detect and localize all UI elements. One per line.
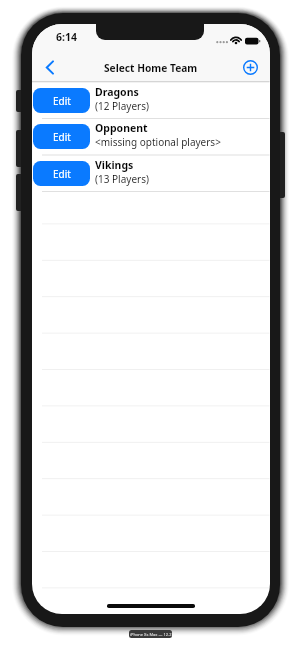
staticText: Select Home Team [104,61,198,75]
button[interactable]: Edit [32,82,270,119]
button[interactable]: Edit [33,161,90,186]
staticText: (12 Players) [95,99,149,113]
staticText: Opponent [95,121,148,135]
staticText: (13 Players) [95,172,149,186]
button[interactable] [241,57,260,77]
staticText: Vikings [95,158,134,172]
staticText: <missing optional players> [95,135,221,149]
staticText: Edit [53,94,71,108]
button[interactable]: Edit [32,118,270,155]
button[interactable]: Edit [32,155,270,192]
staticText: 6:14 [56,30,77,44]
staticText: Edit [53,130,71,144]
button[interactable]: Edit [33,124,90,149]
button[interactable] [42,57,60,77]
staticText: iPhone Xs Max — 12.2 [130,632,172,637]
button[interactable]: Edit [33,88,90,113]
staticText: Dragons [95,85,139,99]
staticText: Edit [53,167,71,181]
